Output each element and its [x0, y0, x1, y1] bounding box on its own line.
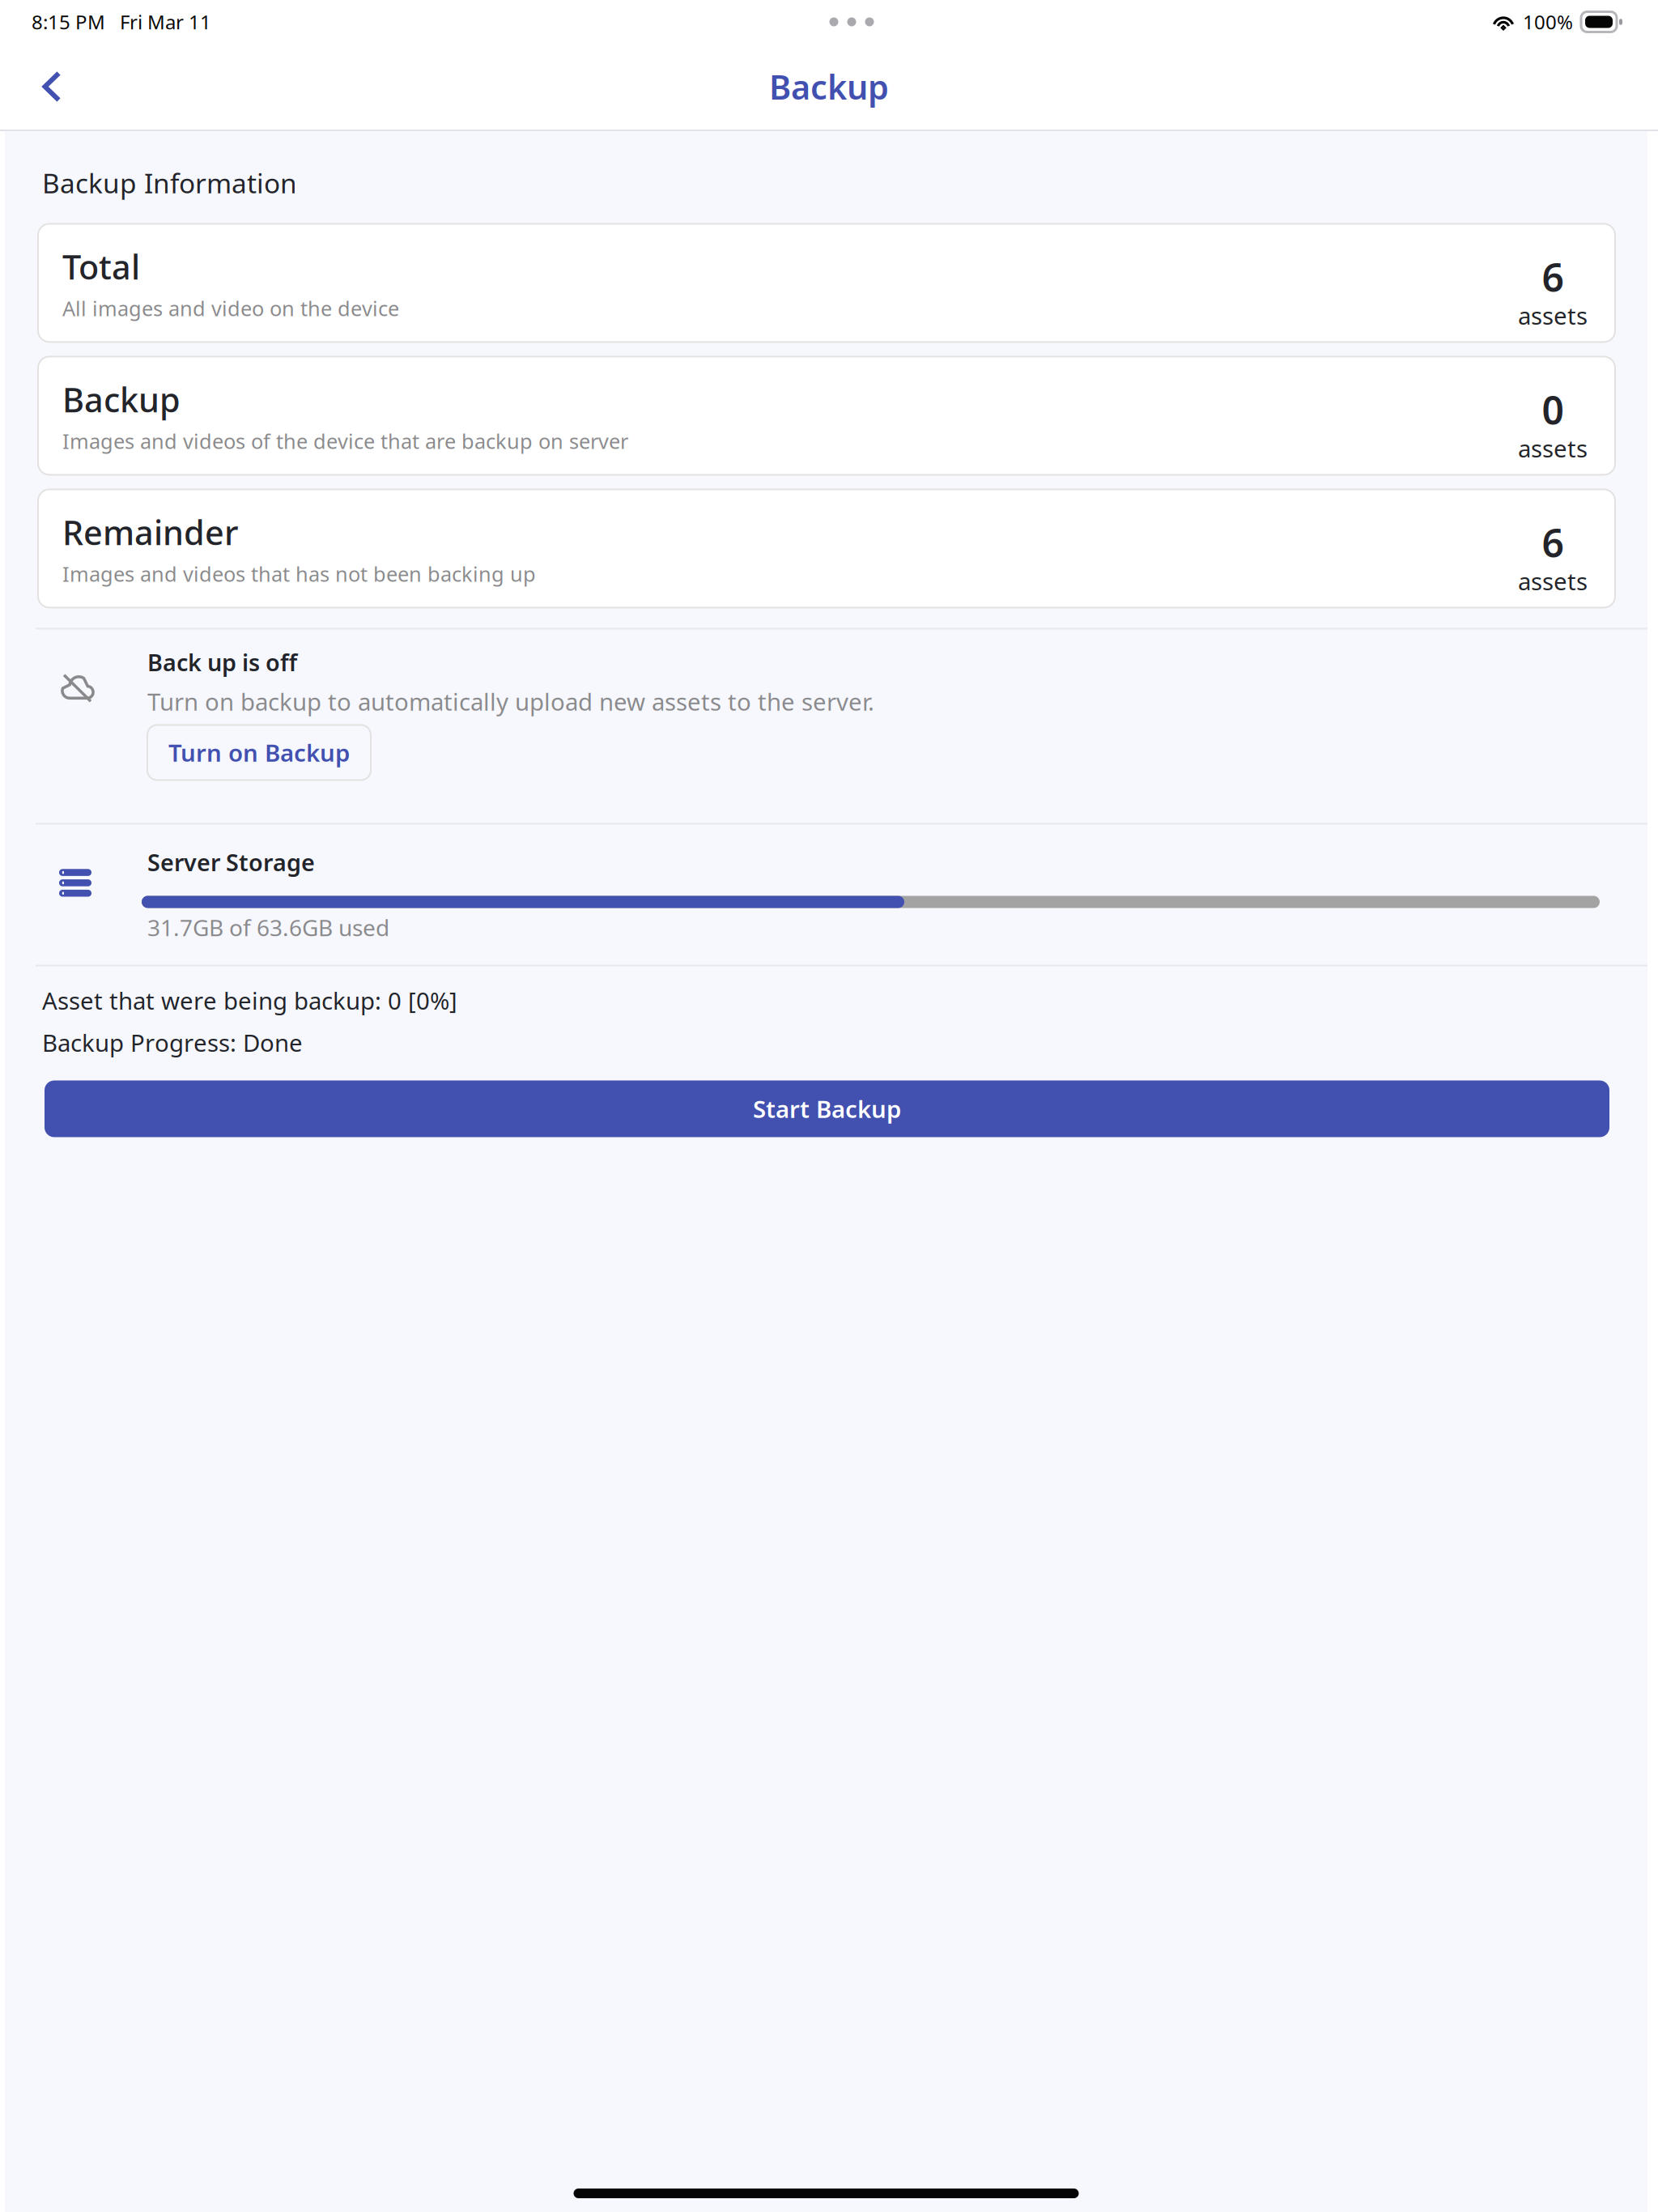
- staticText: All images and video on the device: [62, 294, 399, 322]
- staticText: Backup: [769, 64, 889, 109]
- staticText: Back up is off: [147, 646, 297, 678]
- staticText: Server Storage: [147, 846, 315, 878]
- staticText: 31.7GB of 63.6GB used: [147, 912, 389, 943]
- staticText: 100%: [1523, 9, 1573, 35]
- staticText: assets: [1518, 432, 1588, 464]
- staticText: Remainder: [62, 509, 238, 555]
- button[interactable]: Start Backup: [45, 1080, 1609, 1137]
- staticText: Turn on Backup: [168, 736, 350, 769]
- staticText: assets: [1518, 299, 1588, 332]
- button[interactable]: Turn on Backup: [147, 725, 371, 780]
- staticText: Backup Information: [42, 164, 297, 201]
- staticText: Images and videos that has not been back…: [62, 560, 536, 588]
- staticText: assets: [1518, 565, 1588, 597]
- staticText: Turn on backup to automatically upload n…: [147, 685, 874, 718]
- staticText: 0: [1542, 383, 1564, 436]
- staticText: Asset that were being backup: 0 [0%]: [42, 984, 457, 1017]
- staticText: Backup Progress: Done: [42, 1026, 303, 1059]
- staticText: Start Backup: [753, 1093, 901, 1125]
- button[interactable]: Back: [21, 52, 83, 121]
- staticText: 6: [1542, 250, 1564, 303]
- staticText: Total: [62, 244, 140, 289]
- staticText: Backup: [62, 376, 181, 422]
- staticText: Images and videos of the device that are…: [62, 427, 628, 455]
- staticText: 8:15 PM Fri Mar 11: [32, 9, 211, 35]
- staticText: 6: [1542, 516, 1564, 569]
